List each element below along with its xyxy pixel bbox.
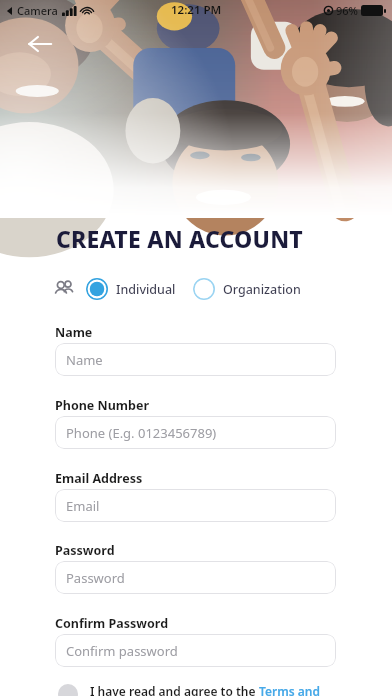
- staticText: Confirm password: [66, 642, 178, 660]
- staticText: Name: [55, 324, 93, 341]
- staticText: 96%: [336, 3, 358, 18]
- button[interactable]: Phone (E.g. 0123456789): [55, 416, 336, 449]
- staticText: Phone Number: [55, 397, 149, 414]
- button[interactable]: Email: [55, 489, 336, 522]
- staticText: Password: [55, 542, 115, 559]
- button[interactable]: Individual: [86, 276, 176, 302]
- staticText: Camera: [17, 3, 58, 18]
- staticText: CREATE AN ACCOUNT: [56, 223, 303, 254]
- staticText: I have read and agree to the: [90, 683, 259, 696]
- staticText: Phone (E.g. 0123456789): [66, 424, 217, 442]
- button[interactable]: Terms and: [259, 683, 320, 696]
- button[interactable]: Back: [18, 22, 62, 66]
- button[interactable]: Organization: [193, 276, 301, 302]
- staticText: Name: [66, 351, 103, 369]
- button[interactable]: I have read and agree to the: [58, 683, 336, 696]
- staticText: 12:21 PM: [171, 2, 222, 18]
- button[interactable]: Name: [55, 343, 336, 376]
- staticText: Confirm Password: [55, 615, 169, 632]
- staticText: Email: [66, 497, 100, 515]
- other: Account type: [54, 279, 74, 299]
- staticText: Password: [66, 569, 125, 587]
- button[interactable]: Password: [55, 561, 336, 594]
- staticText: Individual: [116, 281, 176, 298]
- staticText: Organization: [223, 281, 301, 298]
- staticText: Email Address: [55, 470, 143, 487]
- button[interactable]: Confirm password: [55, 634, 336, 667]
